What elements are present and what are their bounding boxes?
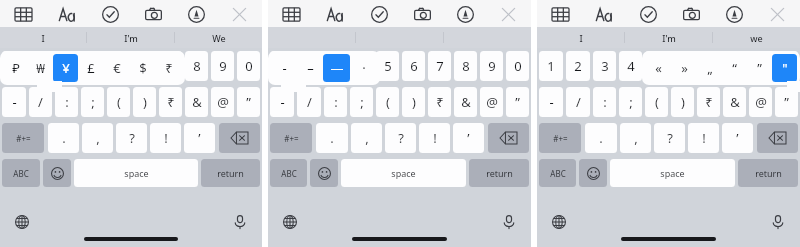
button[interactable]: Emoji: [579, 159, 607, 187]
button[interactable]: #+=: [270, 123, 312, 153]
button[interactable]: -: [271, 54, 297, 82]
button[interactable]: 8: [185, 51, 208, 81]
button[interactable]: 2: [297, 51, 321, 81]
button[interactable]: /: [297, 87, 321, 117]
button[interactable]: Switch keyboard: [280, 212, 300, 232]
button[interactable]: ,: [620, 123, 651, 153]
button[interactable]: Text format: [54, 1, 80, 27]
button[interactable]: 3: [324, 51, 347, 81]
button[interactable]: Emoji: [310, 159, 338, 187]
button[interactable]: ?: [385, 123, 416, 153]
button[interactable]: #+=: [2, 123, 44, 153]
button[interactable]: &: [185, 87, 208, 117]
button[interactable]: ,: [82, 123, 113, 153]
button[interactable]: Delete: [219, 123, 260, 153]
button[interactable]: Dictate: [768, 212, 788, 232]
button[interactable]: ): [133, 87, 156, 117]
button[interactable]: (: [376, 87, 399, 117]
button[interactable]: 5: [645, 51, 668, 81]
button[interactable]: $: [130, 54, 156, 82]
button[interactable]: space: [610, 159, 735, 187]
button[interactable]: ”: [237, 87, 260, 117]
button[interactable]: ABC: [539, 159, 576, 187]
button[interactable]: ): [671, 87, 694, 117]
button[interactable]: ;: [350, 87, 373, 117]
button[interactable]: ’: [453, 123, 484, 153]
button[interactable]: ”: [506, 87, 529, 117]
button[interactable]: !: [150, 123, 181, 153]
button[interactable]: ₩: [28, 54, 53, 82]
button[interactable]: Close: [764, 1, 790, 27]
button[interactable]: Camera: [678, 1, 704, 27]
button[interactable]: ’: [722, 123, 753, 153]
button[interactable]: Table: [278, 1, 304, 27]
button[interactable]: Switch keyboard: [549, 212, 569, 232]
button[interactable]: ₹: [159, 87, 182, 117]
button[interactable]: .: [48, 123, 79, 153]
button[interactable]: -: [270, 87, 294, 117]
button[interactable]: 6: [133, 51, 156, 81]
button[interactable]: 9: [749, 51, 772, 81]
button[interactable]: 7: [428, 51, 451, 81]
button[interactable]: !: [688, 123, 719, 153]
button[interactable]: I'm: [625, 27, 712, 48]
button[interactable]: Switch keyboard: [12, 212, 32, 232]
button[interactable]: 8: [723, 51, 746, 81]
button[interactable]: Checklist: [366, 1, 392, 27]
button[interactable]: 0: [506, 51, 529, 81]
button[interactable]: £: [78, 54, 104, 82]
button[interactable]: -: [2, 87, 26, 117]
button[interactable]: ABC: [2, 159, 40, 187]
button[interactable]: 2: [29, 51, 52, 81]
button[interactable]: (: [645, 87, 668, 117]
button[interactable]: 4: [81, 51, 104, 81]
button[interactable]: -: [539, 87, 563, 117]
button[interactable]: 4: [350, 51, 373, 81]
button[interactable]: /: [566, 87, 590, 117]
button[interactable]: 3: [55, 51, 78, 81]
button[interactable]: Emoji: [43, 159, 71, 187]
button[interactable]: Camera: [409, 1, 435, 27]
button[interactable]: 1: [539, 51, 563, 81]
button[interactable]: 7: [159, 51, 182, 81]
button[interactable]: We: [175, 27, 262, 48]
button[interactable]: 0: [775, 51, 798, 81]
button[interactable]: (: [107, 87, 130, 117]
button[interactable]: ₹: [697, 87, 720, 117]
button[interactable]: @: [480, 87, 503, 117]
button[interactable]: .: [585, 123, 617, 153]
button[interactable]: 7: [697, 51, 720, 81]
button[interactable]: 0: [237, 51, 260, 81]
button[interactable]: Checklist: [97, 1, 123, 27]
button[interactable]: 1: [2, 51, 26, 81]
button[interactable]: Delete: [488, 123, 529, 153]
button[interactable]: 1: [270, 51, 294, 81]
button[interactable]: Close: [495, 1, 521, 27]
button[interactable]: ₽: [3, 54, 28, 82]
button[interactable]: return: [469, 159, 529, 187]
button[interactable]: Dictate: [230, 212, 250, 232]
button[interactable]: ?: [116, 123, 147, 153]
button[interactable]: 9: [211, 51, 234, 81]
button[interactable]: ’: [184, 123, 215, 153]
button[interactable]: ”: [775, 87, 798, 117]
button[interactable]: ₹: [156, 54, 182, 82]
button[interactable]: »: [671, 54, 697, 82]
button[interactable]: 6: [402, 51, 425, 81]
button[interactable]: .: [316, 123, 348, 153]
button[interactable]: Markup: [452, 1, 478, 27]
button[interactable]: ;: [81, 87, 104, 117]
button[interactable]: Checklist: [635, 1, 661, 27]
button[interactable]: „: [697, 54, 722, 82]
button[interactable]: €: [104, 54, 130, 82]
button[interactable]: 5: [107, 51, 130, 81]
button[interactable]: ": [772, 54, 797, 82]
button[interactable]: —: [323, 54, 350, 82]
button[interactable]: ¥: [53, 54, 78, 82]
button[interactable]: :: [593, 87, 616, 117]
button[interactable]: #+=: [539, 123, 581, 153]
button[interactable]: /: [29, 87, 52, 117]
